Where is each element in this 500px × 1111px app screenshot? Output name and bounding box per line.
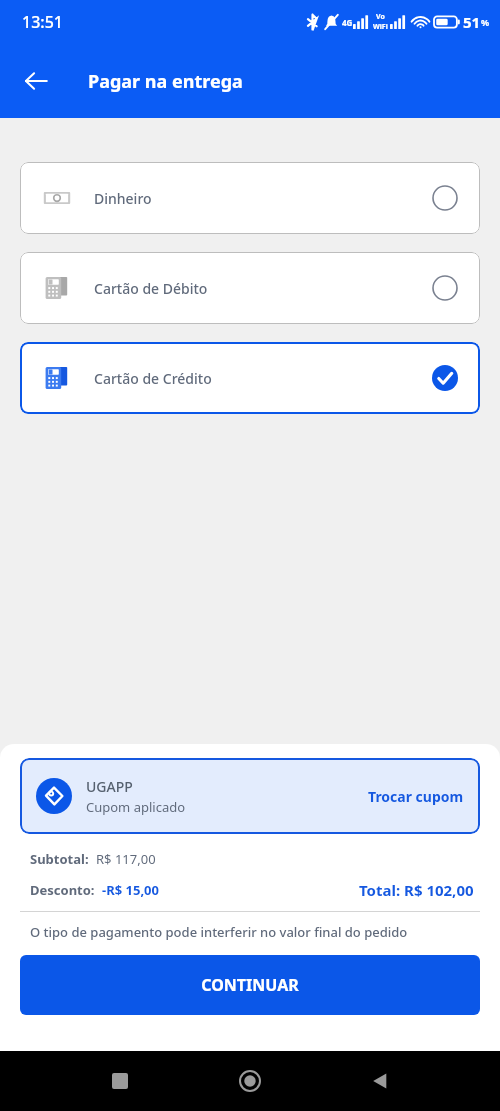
button[interactable]: Recent apps — [100, 1061, 140, 1101]
staticText: Subtotal: — [30, 850, 89, 868]
staticText: Pagar na entrega — [88, 69, 243, 94]
staticText: R$ 117,00 — [96, 850, 156, 868]
staticText: Trocar cupom — [368, 787, 464, 806]
staticText: Desconto: — [30, 881, 95, 899]
button[interactable]: UGAPP — [20, 758, 480, 834]
staticText: 13:51 — [22, 11, 63, 33]
staticText: 4G — [342, 17, 353, 28]
staticText: Cupom aplicado — [86, 798, 186, 816]
staticText: Dinheiro — [94, 189, 152, 208]
staticText: Total: R$ 102,00 — [359, 880, 474, 900]
button[interactable]: Cartão de Débito — [20, 252, 480, 324]
staticText: WiFi — [373, 22, 388, 32]
staticText: -R$ 15,00 — [102, 881, 159, 899]
button[interactable]: Cartão de Crédito — [20, 342, 480, 414]
staticText: Vo — [376, 12, 385, 22]
button[interactable]: CONTINUAR — [20, 955, 480, 1015]
button[interactable]: Back — [360, 1061, 400, 1101]
staticText: UGAPP — [86, 777, 133, 796]
staticText: 51 — [463, 12, 481, 32]
staticText: O tipo de pagamento pode interferir no v… — [30, 923, 470, 941]
button[interactable]: Back — [14, 59, 58, 103]
staticText: % — [481, 16, 490, 28]
staticText: Cartão de Débito — [94, 279, 208, 298]
button[interactable]: Home — [230, 1061, 270, 1101]
staticText: CONTINUAR — [201, 974, 299, 996]
staticText: Cartão de Crédito — [94, 369, 212, 388]
button[interactable]: Dinheiro — [20, 162, 480, 234]
